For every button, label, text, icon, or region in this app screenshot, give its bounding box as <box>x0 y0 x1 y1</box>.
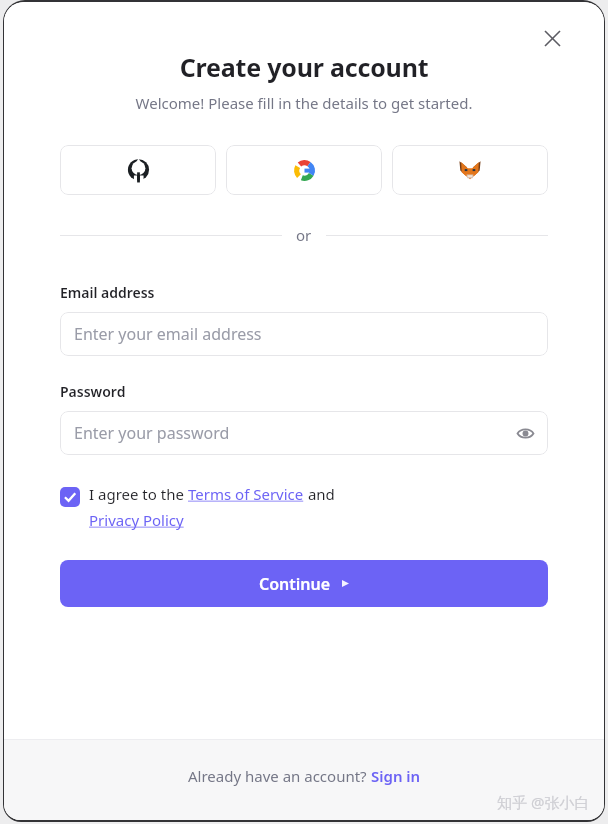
button[interactable]: Continue <box>60 560 548 607</box>
button[interactable]: Close <box>534 20 570 56</box>
staticText: or <box>296 225 312 245</box>
staticText: Email address <box>60 283 155 302</box>
button[interactable]: Sign up with Google <box>226 145 382 195</box>
button[interactable]: Sign up with GitHub <box>60 145 216 195</box>
staticText: Enter your email address <box>74 323 262 345</box>
staticText: Already have an account? <box>188 766 371 786</box>
button[interactable]: Terms of Service <box>188 484 304 504</box>
button[interactable]: Enter your email address <box>60 312 548 356</box>
staticText: and <box>304 484 335 504</box>
staticText: Create your account <box>4 50 604 84</box>
staticText: Password <box>60 382 126 401</box>
staticText: Welcome! Please fill in the details to g… <box>4 93 604 113</box>
staticText: I agree to the <box>89 484 188 504</box>
button[interactable]: I agree, checked <box>60 487 80 507</box>
button[interactable]: Sign up with MetaMask <box>392 145 548 195</box>
staticText: Terms of Service <box>188 484 304 504</box>
button[interactable]: Enter your password <box>60 411 548 455</box>
button[interactable]: Sign in <box>371 766 421 786</box>
button[interactable]: Privacy Policy <box>89 510 184 530</box>
button[interactable]: Show password <box>510 418 540 448</box>
staticText: 知乎 @张小白 <box>497 792 590 812</box>
staticText: Sign in <box>371 766 421 786</box>
staticText: Continue <box>259 573 331 595</box>
staticText: Privacy Policy <box>89 510 184 530</box>
staticText: Enter your password <box>74 422 230 444</box>
